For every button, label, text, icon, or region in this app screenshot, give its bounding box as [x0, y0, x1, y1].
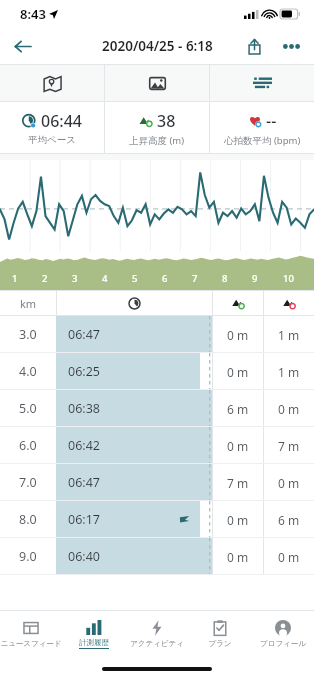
button[interactable]: Map	[0, 64, 104, 102]
staticText: 06:40	[68, 548, 100, 565]
button[interactable]: --	[210, 102, 314, 154]
staticText: 心拍数平均 (bpm)	[224, 134, 301, 147]
staticText: 7 m	[278, 438, 300, 454]
staticText: 5	[132, 272, 138, 285]
staticText: 06:17	[68, 511, 100, 528]
staticText: 平均ペース	[28, 134, 76, 146]
staticText: 06:42	[68, 437, 100, 454]
button[interactable]: プロフィール	[251, 610, 314, 658]
button[interactable]: More options	[272, 28, 310, 64]
staticText: 4.0	[19, 363, 37, 380]
staticText: 0 m	[227, 549, 249, 565]
staticText: 0 m	[278, 475, 300, 491]
button[interactable]: Photos	[105, 64, 209, 102]
staticText: 7 m	[227, 475, 249, 491]
button[interactable]: 7.0	[0, 464, 314, 501]
staticText: 6	[162, 272, 168, 285]
staticText: 6.0	[19, 437, 37, 454]
staticText: 1	[12, 272, 18, 285]
staticText: 0 m	[227, 512, 249, 528]
button[interactable]: 9.0	[0, 538, 314, 575]
staticText: 9.0	[19, 548, 37, 565]
button[interactable]: 3.0	[0, 316, 314, 353]
staticText: 38	[157, 110, 176, 132]
button[interactable]: 8.0	[0, 501, 314, 538]
staticText: 06:25	[68, 363, 100, 380]
button[interactable]: Splits	[210, 64, 314, 102]
staticText: 3.0	[19, 326, 37, 343]
staticText: 0 m	[227, 327, 249, 343]
staticText: 0 m	[278, 401, 300, 417]
button[interactable]: 38	[105, 102, 209, 154]
button[interactable]: 6.0	[0, 427, 314, 464]
staticText: 4	[102, 272, 108, 285]
staticText: km	[20, 296, 37, 311]
staticText: ニュースフィード	[0, 639, 62, 648]
staticText: 8:43	[20, 5, 46, 23]
staticText: 7.0	[19, 474, 37, 491]
button[interactable]: プラン	[188, 610, 251, 658]
staticText: 0 m	[278, 549, 300, 565]
staticText: プラン	[208, 639, 232, 648]
staticText: 7	[192, 272, 198, 285]
staticText: 2020/04/25 - 6:18	[102, 37, 213, 55]
staticText: 6 m	[227, 401, 249, 417]
button[interactable]: 5.0	[0, 390, 314, 427]
staticText: プロフィール	[260, 639, 306, 648]
staticText: 2	[42, 272, 48, 285]
staticText: 9	[252, 272, 258, 285]
button[interactable]: Back	[0, 28, 44, 64]
button[interactable]: 06:44	[0, 102, 104, 154]
staticText: 10	[283, 272, 294, 285]
button[interactable]: 4.0	[0, 353, 314, 390]
staticText: 0 m	[227, 438, 249, 454]
staticText: 06:44	[41, 110, 82, 132]
staticText: --	[266, 110, 277, 132]
staticText: 上昇高度 (m)	[129, 134, 185, 147]
button[interactable]: 計測履歴	[62, 610, 125, 658]
button[interactable]: Share	[236, 28, 272, 64]
staticText: 計測履歴	[79, 638, 109, 647]
staticText: 8.0	[19, 511, 37, 528]
staticText: 06:38	[68, 400, 100, 417]
staticText: 06:47	[68, 474, 100, 491]
staticText: 8	[222, 272, 228, 285]
staticText: アクティビティ	[130, 639, 184, 648]
staticText: 0 m	[227, 364, 249, 380]
staticText: 1 m	[278, 364, 300, 380]
button[interactable]: ニュースフィード	[0, 610, 62, 658]
button[interactable]: アクティビティ	[125, 610, 188, 658]
staticText: 06:47	[68, 326, 100, 343]
staticText: 6 m	[278, 512, 300, 528]
staticText: 1 m	[278, 327, 300, 343]
staticText: 5.0	[19, 400, 37, 417]
staticText: 3	[72, 272, 78, 285]
